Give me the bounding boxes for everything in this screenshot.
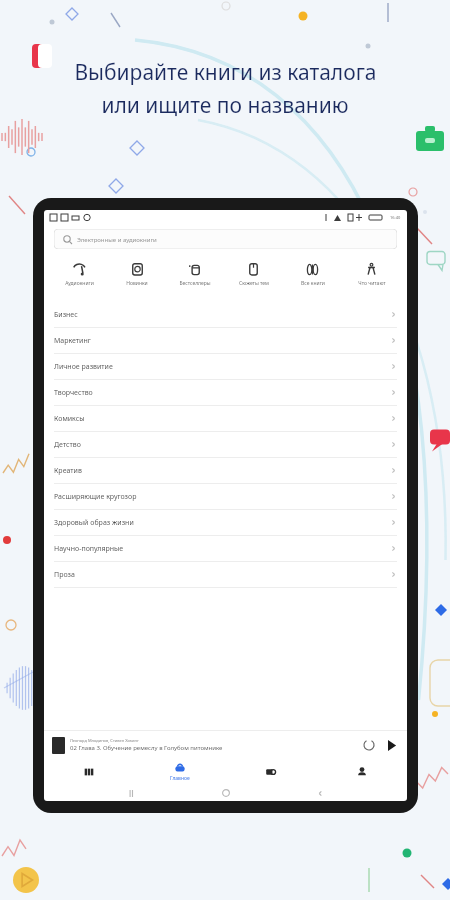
staticText: Личное развитие	[54, 362, 113, 372]
staticText: Сюжеты тем	[239, 280, 269, 287]
button[interactable]: Сюжеты тем	[224, 259, 283, 289]
button[interactable]: Леонард Млодинов, Стивен Хокинг	[52, 731, 399, 759]
staticText: Главное	[170, 775, 190, 782]
button[interactable]: Маркетинг	[54, 328, 397, 353]
button[interactable]: Search	[225, 759, 316, 785]
staticText: Все книги	[301, 280, 325, 287]
staticText: Комиксы	[54, 414, 85, 424]
staticText: Электронные и аудиокниги	[77, 236, 157, 244]
button[interactable]: Расширяющие кругозор	[54, 484, 397, 509]
button[interactable]: Креатив	[54, 458, 397, 483]
button[interactable]: Научно-популярные	[54, 536, 397, 561]
staticText: Маркетинг	[54, 336, 91, 346]
button[interactable]: Личное развитие	[54, 354, 397, 379]
button[interactable]: Детство	[54, 432, 397, 457]
button[interactable]: Творчество	[54, 380, 397, 405]
staticText: Новинки	[126, 280, 148, 287]
staticText: или ищите по названию	[101, 91, 349, 120]
button[interactable]: Комиксы	[54, 406, 397, 431]
staticText: Бестселлеры	[179, 280, 211, 287]
button[interactable]: Проза	[54, 562, 397, 587]
button[interactable]: Аудиокниги	[50, 259, 108, 289]
staticText: Креатив	[54, 466, 82, 476]
button[interactable]: Rewind 15 seconds	[361, 737, 377, 753]
staticText: 02 Глава 3. Обучение ремеслу в Голубом п…	[70, 744, 223, 752]
button[interactable]: Back	[312, 785, 328, 801]
button[interactable]: Бестселлеры	[166, 259, 224, 289]
staticText: Здоровый образ жизни	[54, 518, 134, 528]
staticText: Леонард Млодинов, Стивен Хокинг	[70, 738, 139, 743]
staticText: Проза	[54, 570, 75, 580]
button[interactable]: Home	[218, 785, 234, 801]
staticText: Аудиокниги	[65, 280, 94, 287]
staticText: Детство	[54, 440, 81, 450]
button[interactable]: Здоровый образ жизни	[54, 510, 397, 535]
button[interactable]: Бизнес	[54, 302, 397, 327]
staticText: Творчество	[54, 388, 93, 398]
staticText: 16:40	[390, 215, 401, 220]
staticText: Бизнес	[54, 310, 78, 320]
button[interactable]: Что читают	[342, 259, 401, 289]
button[interactable]: Главное	[134, 759, 225, 785]
button[interactable]: Все книги	[283, 259, 342, 289]
button[interactable]: Новинки	[108, 259, 166, 289]
staticText: Расширяющие кругозор	[54, 492, 137, 502]
button[interactable]: Электронные и аудиокниги	[54, 229, 397, 249]
staticText: Научно-популярные	[54, 544, 124, 554]
button[interactable]: Play	[383, 737, 399, 753]
staticText: Выбирайте книги из каталога	[74, 58, 377, 87]
staticText: Что читают	[358, 280, 386, 287]
button[interactable]: Recents	[123, 785, 139, 801]
button[interactable]: Profile	[316, 759, 407, 785]
button[interactable]: Library	[44, 759, 134, 785]
